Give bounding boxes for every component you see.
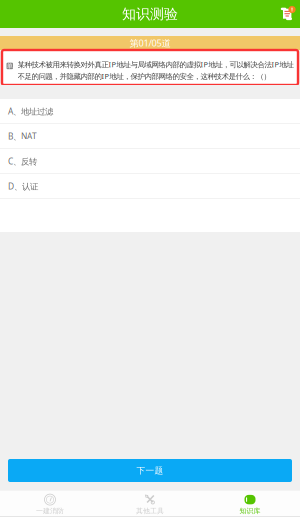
staticText: 单 — [7, 62, 13, 70]
button[interactable]: 知识库 — [200, 490, 300, 516]
button[interactable]: 错题本 — [277, 7, 293, 21]
staticText: B、NAT — [8, 131, 37, 142]
staticText: D、认证 — [8, 181, 38, 192]
button[interactable]: 其他工具 — [100, 490, 200, 516]
staticText: 知识库 — [239, 507, 260, 515]
button[interactable]: B、NAT — [0, 124, 300, 149]
staticText: 某种技术被用来转换对外真正IP地址与局域网络内部的虚拟IP地址，可以解决合法IP… — [17, 59, 293, 81]
staticText: C、反转 — [8, 156, 37, 167]
button[interactable]: C、反转 — [0, 149, 300, 174]
button[interactable]: A、地址过滤 — [0, 99, 300, 124]
staticText: 知识测验 — [122, 5, 178, 23]
button[interactable]: D、认证 — [0, 174, 300, 199]
staticText: A、地址过滤 — [8, 106, 53, 117]
staticText: 下一题 — [136, 465, 163, 476]
staticText: 一建消防 — [36, 507, 64, 515]
button[interactable]: 一建消防 — [0, 490, 100, 516]
staticText: 第01/05道 — [129, 37, 170, 49]
button[interactable]: 下一题 — [8, 459, 292, 482]
staticText: 其他工具 — [136, 507, 164, 515]
